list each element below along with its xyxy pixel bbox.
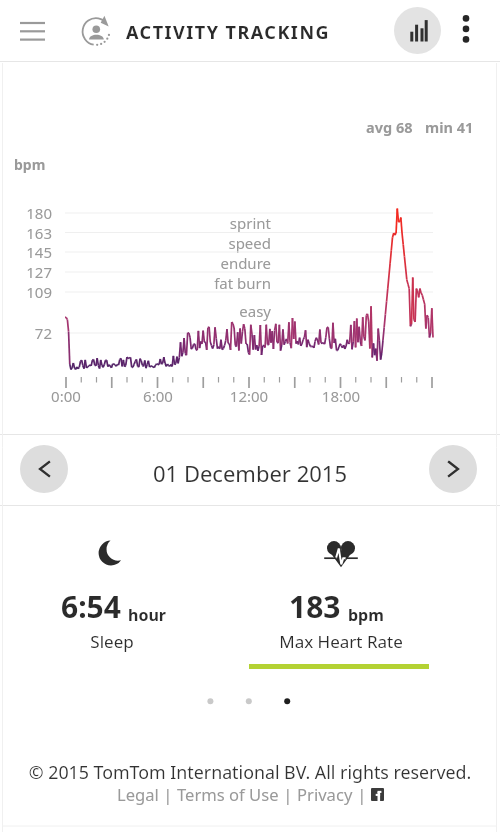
button[interactable]: 6:54 [2, 506, 250, 711]
staticText: ACTIVITY TRACKING [126, 20, 331, 45]
staticText: | [279, 783, 297, 806]
staticText: 180 [6, 203, 52, 223]
staticText: 6:00 [118, 386, 198, 406]
staticText: hour [128, 604, 166, 626]
staticText: endure [71, 253, 271, 273]
staticText: 72 [6, 323, 52, 343]
staticText: 163 [6, 223, 52, 243]
staticText: fat burn [71, 273, 271, 293]
staticText: 183 [289, 586, 341, 627]
staticText: speed [71, 233, 271, 253]
button[interactable]: Menu [8, 6, 57, 55]
button[interactable]: More options [448, 6, 486, 55]
staticText: 12:00 [209, 386, 289, 406]
staticText: Max Heart Rate [231, 630, 451, 653]
staticText: bpm [14, 155, 46, 174]
staticText: avg 68 [366, 117, 413, 137]
button[interactable]: 183 [230, 506, 478, 711]
staticText: 109 [6, 282, 52, 302]
staticText: 0:00 [26, 386, 106, 406]
staticText: | [159, 783, 177, 806]
staticText: 127 [6, 262, 52, 282]
staticText: easy [71, 301, 271, 321]
staticText: Sleep [2, 630, 222, 653]
staticText: min 41 [425, 117, 474, 137]
staticText: | [353, 783, 371, 806]
staticText: © 2015 TomTom International BV. All righ… [0, 760, 500, 784]
staticText: 145 [6, 242, 52, 262]
button[interactable]: Legal [117, 783, 159, 806]
staticText: sprint [71, 213, 271, 233]
staticText: 01 December 2015 [0, 458, 500, 488]
staticText: 6:54 [61, 586, 121, 627]
button[interactable]: Next day [429, 445, 477, 493]
button[interactable]: Terms of Use [177, 783, 279, 806]
button[interactable]: Facebook [371, 788, 384, 801]
button[interactable]: Statistics [394, 7, 441, 54]
button[interactable]: Privacy [297, 783, 353, 806]
button[interactable]: Previous day [20, 445, 68, 493]
staticText: bpm [348, 604, 384, 626]
staticText: 18:00 [301, 386, 381, 406]
